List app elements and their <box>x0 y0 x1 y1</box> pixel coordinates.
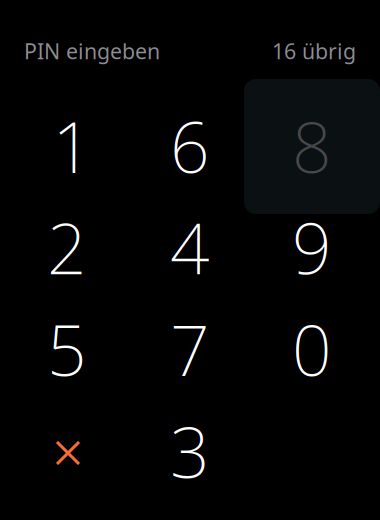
staticText: 5 <box>47 303 87 395</box>
button[interactable]: 8 <box>251 96 373 197</box>
button[interactable]: 9 <box>251 198 373 299</box>
button[interactable]: 0 <box>251 299 373 400</box>
staticText: 1 <box>52 100 92 192</box>
staticText: 0 <box>292 303 332 395</box>
staticText: 3 <box>170 405 210 497</box>
staticText: 8 <box>292 100 332 192</box>
staticText: 7 <box>170 303 210 395</box>
staticText: 2 <box>47 201 87 293</box>
button[interactable]: 5 <box>6 299 128 400</box>
staticText: 4 <box>170 201 210 293</box>
button[interactable]: 2 <box>6 198 128 299</box>
button[interactable]: Delete <box>6 401 128 502</box>
staticText: 9 <box>292 201 332 293</box>
staticText: PIN eingeben <box>24 37 160 65</box>
button[interactable]: 1 <box>6 96 128 197</box>
button[interactable]: 6 <box>129 96 251 197</box>
staticText: 16 übrig <box>272 37 356 65</box>
button[interactable]: 3 <box>129 401 251 502</box>
staticText: 6 <box>170 100 210 192</box>
button[interactable]: 7 <box>129 299 251 400</box>
button[interactable]: 4 <box>129 198 251 299</box>
